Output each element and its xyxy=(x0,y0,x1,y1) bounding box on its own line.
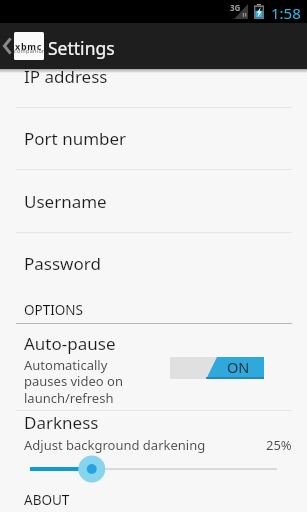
button[interactable]: Darkness xyxy=(0,411,307,484)
button[interactable]: Port number xyxy=(0,108,307,169)
staticText: Port number xyxy=(24,127,127,150)
staticText: Auto-pause xyxy=(24,332,116,355)
staticText: Settings xyxy=(48,36,115,60)
button[interactable]: IP address xyxy=(0,69,307,107)
staticText: IP address xyxy=(24,65,108,88)
button[interactable]: Auto-pause toggle xyxy=(170,357,264,379)
button[interactable]: Username xyxy=(0,170,307,232)
staticText: Automatically pauses video on launch/ref… xyxy=(24,356,123,407)
staticText: Darkness xyxy=(24,411,99,434)
button[interactable]: Navigate up xyxy=(0,23,44,69)
staticText: Adjust background darkening xyxy=(24,436,206,454)
staticText: Password xyxy=(24,252,101,275)
staticText: 3G xyxy=(230,2,241,13)
staticText: 25% xyxy=(266,436,292,454)
button[interactable]: Darkness slider xyxy=(0,454,307,482)
button[interactable]: Password xyxy=(0,233,307,294)
staticText: Username xyxy=(24,190,107,213)
staticText: companion xyxy=(14,47,44,54)
button[interactable]: Auto-pause xyxy=(0,324,307,410)
staticText: ON xyxy=(227,357,250,377)
staticText: 1:58 xyxy=(271,3,301,23)
staticText: OPTIONS xyxy=(24,301,84,319)
staticText: xbmc xyxy=(15,40,43,52)
staticText: ABOUT xyxy=(24,491,70,509)
